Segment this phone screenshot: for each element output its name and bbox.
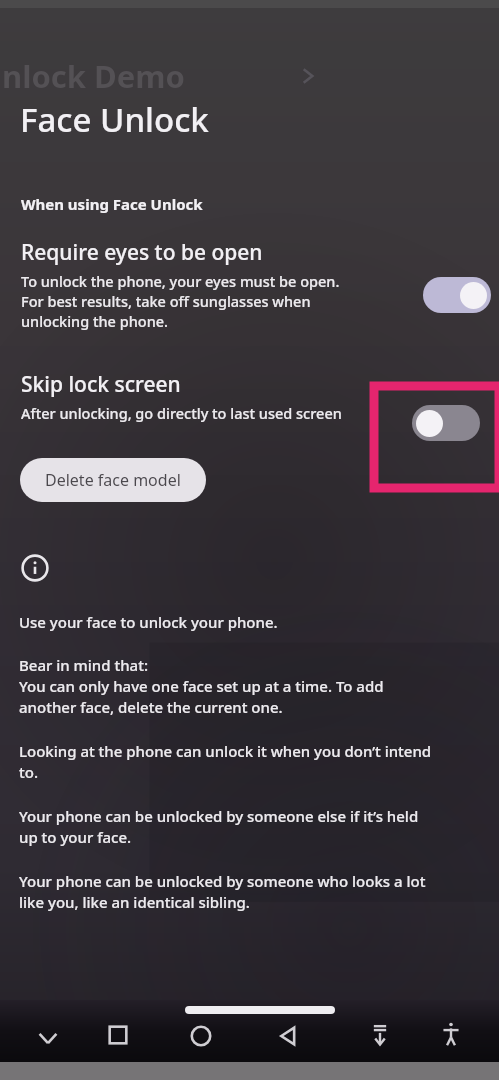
staticText: nlock Demo	[2, 55, 185, 97]
button[interactable]: Toggle on	[423, 277, 491, 313]
button[interactable]: Back	[274, 1022, 302, 1050]
staticText: Looking at the phone can unlock it when …	[19, 741, 432, 783]
staticText: Require eyes to be open	[21, 238, 263, 267]
button[interactable]: Require eyes to be open	[0, 238, 499, 348]
staticText: To unlock the phone, your eyes must be o…	[21, 271, 340, 331]
button[interactable]: Recents	[105, 1022, 131, 1048]
staticText: After unlocking, go directly to last use…	[21, 403, 342, 423]
staticText: When using Face Unlock	[21, 194, 203, 214]
button[interactable]: Accessibility	[437, 1020, 465, 1048]
staticText: Use your face to unlock your phone.	[19, 612, 278, 632]
button[interactable]: Hide keyboard	[34, 1024, 62, 1052]
button[interactable]: Home	[187, 1022, 215, 1050]
button[interactable]: Download	[366, 1020, 394, 1048]
staticText: Skip lock screen	[21, 370, 181, 399]
other: Information	[21, 554, 49, 582]
staticText: Your phone can be unlocked by someone wh…	[19, 871, 426, 913]
staticText: Your phone can be unlocked by someone el…	[19, 806, 419, 848]
staticText: Delete face model	[45, 469, 181, 491]
staticText: Face Unlock	[20, 97, 209, 142]
button[interactable]: Skip lock screen	[0, 370, 499, 438]
staticText: Bear in mind that: You can only have one…	[19, 655, 384, 718]
button[interactable]: Delete face model	[20, 458, 206, 502]
button[interactable]: Toggle off	[412, 405, 480, 441]
